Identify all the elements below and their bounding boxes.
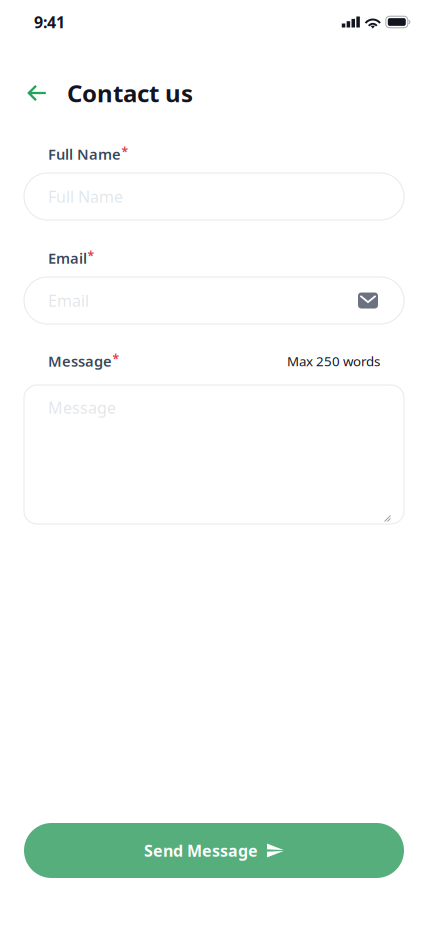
button[interactable]: Back <box>26 78 48 108</box>
button[interactable]: Send Message <box>24 823 404 878</box>
staticText: Message <box>48 351 112 371</box>
staticText: Email <box>48 290 89 311</box>
staticText: Max 250 words <box>287 352 380 370</box>
staticText: Message <box>48 397 116 418</box>
staticText: * <box>87 248 94 264</box>
staticText: Full Name <box>48 186 123 207</box>
staticText: Full Name <box>48 144 121 164</box>
staticText: * <box>112 351 119 367</box>
staticText: * <box>121 144 128 160</box>
staticText: Send Message <box>144 840 258 861</box>
staticText: Email <box>48 248 87 268</box>
staticText: 9:41 <box>34 11 65 33</box>
staticText: Contact us <box>67 77 193 109</box>
